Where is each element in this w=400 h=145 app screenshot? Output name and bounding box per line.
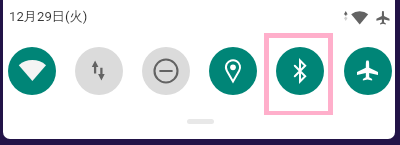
button[interactable]: Airplane mode (344, 47, 392, 95)
button[interactable]: Wi-Fi (8, 47, 56, 95)
button[interactable]: Bluetooth (276, 47, 324, 95)
button[interactable]: Bluetooth (276, 47, 324, 95)
button[interactable]: Data usage (75, 47, 123, 95)
button[interactable]: Do not disturb (142, 47, 190, 95)
button[interactable]: Location (209, 47, 257, 95)
staticText: 12月29日(火) (9, 8, 88, 25)
